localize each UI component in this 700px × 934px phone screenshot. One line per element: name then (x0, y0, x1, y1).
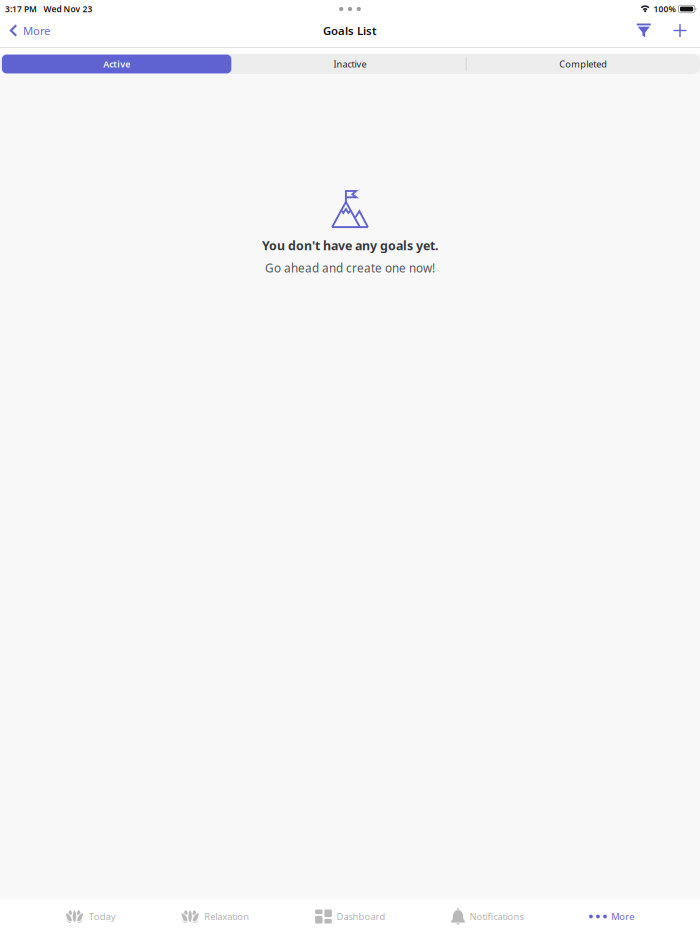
button[interactable]: Active (0, 54, 233, 74)
button[interactable]: Add goal (663, 18, 696, 43)
staticText: More (611, 910, 634, 923)
staticText: Goals List (323, 23, 377, 38)
staticText: Dashboard (337, 910, 386, 923)
staticText: More (23, 23, 50, 38)
button[interactable]: More (589, 899, 634, 934)
button[interactable]: Dashboard (315, 899, 386, 934)
staticText: Go ahead and create one now! (265, 260, 435, 276)
button[interactable]: Filter goals (625, 18, 663, 43)
button[interactable]: Relaxation (181, 899, 249, 934)
staticText: Inactive (333, 58, 366, 70)
staticText: 3:17 PM (5, 3, 37, 15)
staticText: Completed (559, 58, 607, 70)
staticText: Notifications (469, 910, 523, 923)
staticText: Today (89, 910, 116, 923)
button[interactable]: Notifications (451, 899, 523, 934)
staticText: Active (103, 58, 130, 70)
staticText: You don't have any goals yet. (262, 237, 438, 254)
staticText: Relaxation (204, 910, 249, 923)
button[interactable]: Completed (467, 54, 700, 74)
button[interactable]: Today (66, 899, 116, 934)
button[interactable]: More (0, 18, 62, 43)
staticText: Wed Nov 23 (43, 3, 92, 15)
staticText: 100% (653, 3, 675, 15)
button[interactable]: Inactive (233, 54, 467, 74)
